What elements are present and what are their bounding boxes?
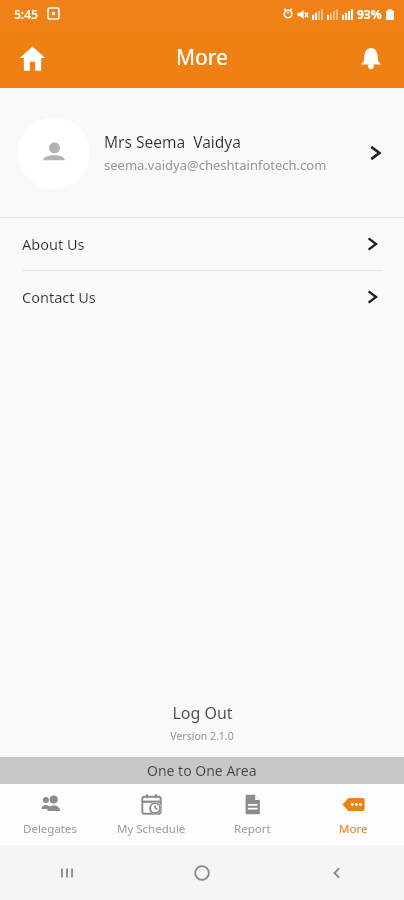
staticText: Contact Us <box>22 287 96 307</box>
button[interactable]: Mrs Seema Vaidya <box>0 88 404 217</box>
staticText: One to One Area <box>147 761 257 780</box>
button[interactable]: Notifications <box>348 35 394 81</box>
staticText: Mrs Seema Vaidya <box>104 131 241 152</box>
staticText: Log Out <box>172 702 233 724</box>
staticText: More <box>339 821 368 837</box>
button[interactable]: About Us <box>0 218 404 270</box>
button[interactable]: Log Out <box>148 700 257 726</box>
button[interactable]: Home <box>8 34 56 82</box>
button[interactable]: More <box>303 784 404 845</box>
button[interactable]: Report <box>202 784 303 845</box>
button[interactable]: Delegates <box>0 784 101 845</box>
button[interactable]: Contact Us <box>0 271 404 323</box>
staticText: 5:45 <box>14 6 38 22</box>
staticText: Version 2.1.0 <box>170 729 234 743</box>
staticText: About Us <box>22 234 85 254</box>
button[interactable]: My Schedule <box>101 784 202 845</box>
staticText: Delegates <box>23 821 78 837</box>
button[interactable]: Recents <box>0 845 134 900</box>
staticText: 93% <box>357 6 382 22</box>
button[interactable]: Back <box>269 845 404 900</box>
staticText: Report <box>234 821 271 837</box>
button[interactable]: One to One Area <box>0 757 404 784</box>
staticText: My Schedule <box>117 821 186 837</box>
staticText: seema.vaidya@cheshtainfotech.com <box>104 156 327 174</box>
button[interactable]: Home <box>134 845 269 900</box>
staticText: More <box>176 43 228 72</box>
